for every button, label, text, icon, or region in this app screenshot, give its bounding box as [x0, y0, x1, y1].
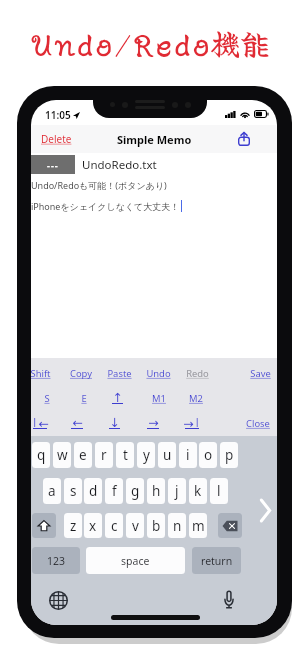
button[interactable]: Dictate: [223, 590, 235, 609]
staticText: Copy: [70, 367, 92, 380]
staticText: M2: [189, 392, 203, 405]
staticText: Close: [246, 417, 270, 430]
staticText: ↑: [112, 390, 123, 402]
staticText: z: [70, 517, 77, 535]
button[interactable]: S: [31, 389, 67, 407]
staticText: a: [48, 482, 56, 500]
staticText: space: [121, 554, 150, 568]
staticText: y: [143, 446, 150, 464]
staticText: S: [44, 392, 50, 405]
button[interactable]: Paste: [99, 364, 139, 382]
staticText: iPhoneをシェイクしなくて大丈夫！: [31, 200, 180, 212]
button[interactable]: Delete: [39, 130, 74, 148]
button[interactable]: m: [189, 513, 207, 538]
staticText: j: [175, 482, 179, 500]
staticText: h: [152, 482, 161, 500]
staticText: ↓: [109, 415, 120, 427]
button[interactable]: d: [84, 478, 102, 504]
button[interactable]: Save: [240, 364, 277, 382]
staticText: 123: [47, 554, 66, 568]
button[interactable]: v: [126, 513, 144, 538]
button[interactable]: Copy: [61, 364, 101, 382]
button[interactable]: →|: [172, 413, 212, 431]
staticText: E: [81, 392, 87, 405]
button[interactable]: f: [105, 478, 123, 504]
staticText: M1: [152, 392, 166, 405]
button[interactable]: ---: [31, 155, 75, 174]
staticText: k: [194, 482, 202, 500]
button[interactable]: x: [84, 513, 102, 538]
button[interactable]: w: [53, 442, 71, 468]
button[interactable]: E: [64, 389, 104, 407]
button[interactable]: t: [116, 442, 134, 468]
staticText: d: [89, 482, 98, 500]
staticText: u: [163, 446, 172, 464]
button[interactable]: ↓: [94, 413, 134, 431]
staticText: Delete: [41, 132, 72, 146]
button[interactable]: return: [192, 547, 241, 574]
button[interactable]: p: [220, 442, 238, 468]
button[interactable]: l: [210, 478, 228, 504]
button[interactable]: s: [64, 478, 82, 504]
button[interactable]: z: [64, 513, 82, 538]
staticText: x: [89, 517, 97, 535]
staticText: ←: [72, 415, 83, 427]
staticText: o: [204, 446, 213, 464]
button[interactable]: u: [158, 442, 176, 468]
staticText: f: [112, 482, 117, 500]
button[interactable]: 123: [32, 547, 80, 574]
button[interactable]: Close: [238, 414, 277, 432]
button[interactable]: →: [133, 413, 173, 431]
button[interactable]: g: [126, 478, 144, 504]
staticText: →|: [183, 415, 201, 427]
staticText: c: [111, 517, 118, 535]
button[interactable]: |←: [31, 413, 60, 431]
staticText: t: [123, 446, 128, 464]
button[interactable]: Shift: [31, 364, 60, 382]
button[interactable]: Backspace: [218, 513, 242, 538]
staticText: 11:05: [45, 108, 71, 122]
staticText: Undo: [146, 367, 171, 380]
button[interactable]: ←: [57, 413, 97, 431]
button[interactable]: o: [199, 442, 217, 468]
button[interactable]: Redo: [177, 364, 217, 382]
button[interactable]: M1: [139, 389, 179, 407]
button[interactable]: b: [147, 513, 165, 538]
staticText: r: [101, 446, 107, 464]
staticText: Paste: [107, 367, 132, 380]
button[interactable]: Undo: [138, 364, 178, 382]
button[interactable]: n: [168, 513, 186, 538]
button[interactable]: Switch keyboard: [49, 591, 68, 610]
staticText: Redo: [186, 367, 209, 380]
staticText: s: [70, 482, 77, 500]
staticText: ---: [47, 159, 59, 171]
staticText: b: [152, 517, 161, 535]
button[interactable]: Shift: [32, 513, 56, 538]
button[interactable]: M2: [176, 389, 216, 407]
button[interactable]: h: [147, 478, 165, 504]
button[interactable]: a: [43, 478, 61, 504]
button[interactable]: y: [137, 442, 155, 468]
staticText: |←: [31, 415, 49, 427]
button[interactable]: space: [86, 547, 185, 574]
staticText: Simple Memo: [117, 132, 192, 147]
staticText: m: [192, 517, 205, 535]
button[interactable]: ↑: [97, 388, 137, 406]
button[interactable]: Share: [237, 131, 251, 147]
staticText: q: [37, 446, 46, 464]
button[interactable]: c: [105, 513, 123, 538]
staticText: e: [79, 446, 87, 464]
button[interactable]: k: [189, 478, 207, 504]
button[interactable]: q: [32, 442, 50, 468]
staticText: w: [57, 446, 68, 464]
button[interactable]: j: [168, 478, 186, 504]
button[interactable]: e: [74, 442, 92, 468]
staticText: g: [131, 482, 140, 500]
staticText: v: [132, 517, 139, 535]
staticText: Save: [250, 367, 271, 380]
staticText: Undo/Redo機能: [30, 21, 271, 64]
button[interactable]: r: [95, 442, 113, 468]
button[interactable]: i: [179, 442, 197, 468]
button[interactable]: Next: [260, 498, 271, 523]
staticText: p: [225, 446, 234, 464]
